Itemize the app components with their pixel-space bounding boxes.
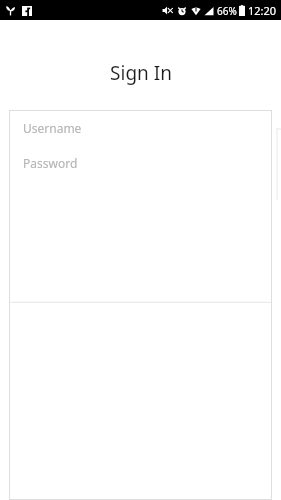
button[interactable]: Password bbox=[9, 145, 272, 181]
staticText: Username bbox=[23, 120, 82, 136]
staticText: Password bbox=[23, 155, 78, 171]
staticText: Sign In bbox=[110, 60, 172, 86]
staticText: 12:20 bbox=[248, 3, 277, 18]
button[interactable]: Username bbox=[9, 110, 272, 145]
staticText: 66% bbox=[217, 4, 237, 18]
